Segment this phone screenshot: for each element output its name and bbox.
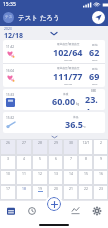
staticText: 16 [99,171,103,176]
button[interactable]: 26 [0,139,16,155]
staticText: 体温 [73,115,79,118]
staticText: 26 [6,140,10,145]
button[interactable]: 15:32 [3,112,105,133]
staticText: 5 [39,156,41,161]
staticText: 21 [69,186,73,191]
button[interactable]: 2 [93,139,108,155]
button[interactable]: Settings [86,200,108,221]
button[interactable]: 16:04 [3,64,105,87]
staticText: 15 [84,171,88,176]
staticText: 15:33 [6,93,15,97]
staticText: 6 [55,156,57,161]
button[interactable]: 4 [16,155,32,170]
staticText: 14 [69,171,73,176]
staticText: 18 [22,186,26,191]
button[interactable]: 13 [48,170,63,185]
button[interactable]: 21 [63,185,78,200]
staticText: 12 [38,171,42,176]
staticText: テスト たろう [18,13,60,22]
button[interactable]: Add record [47,197,61,211]
staticText: 体重 [63,92,69,95]
staticText: 2 [100,140,102,145]
staticText: 62 [89,46,100,58]
button[interactable]: 19 [32,185,48,200]
button[interactable]: 3 [0,155,16,170]
button[interactable]: 18 [16,185,32,200]
button[interactable]: 9 [93,155,108,170]
staticText: 最高血圧/最低血圧 [57,42,80,46]
staticText: テス [5,15,13,20]
staticText: 10 [6,171,10,176]
staticText: 20 [54,186,58,191]
staticText: 8 [85,156,87,161]
staticText: 60.00 [52,95,76,107]
staticText: 13 [54,171,58,176]
staticText: 9 [100,156,102,161]
staticText: 28 [38,140,42,145]
staticText: 2023 [4,26,12,31]
button[interactable]: 11 [16,170,32,185]
button[interactable]: Graph [64,200,86,221]
button[interactable]: Share [92,11,105,24]
staticText: mmHg [64,58,73,61]
button[interactable]: 30 [63,139,78,155]
staticText: bpm [92,58,98,61]
button[interactable]: 14 [63,170,78,185]
staticText: 脈拍 [92,43,98,46]
staticText: bpm [92,82,98,85]
staticText: 69 [89,70,100,82]
button[interactable]: History [21,200,42,221]
button[interactable]: 16 [93,170,108,185]
button[interactable]: Calendar [0,200,21,221]
button[interactable]: 17 [0,185,16,200]
button[interactable]: 5 [32,155,48,170]
button[interactable]: 10 [0,170,16,185]
button[interactable]: 8 [78,155,93,170]
button[interactable]: 15 [78,170,93,185]
staticText: 15:32 [6,116,15,120]
staticText: 4 [23,156,25,161]
button[interactable]: Expand calendar [0,134,108,139]
button[interactable]: 22 [78,185,93,200]
staticText: 23.4 [85,93,102,110]
staticText: 22 [84,186,88,191]
staticText: 7 [70,156,72,161]
staticText: ℃ [83,125,86,129]
staticText: 3 [7,156,9,161]
staticText: 102/64 [53,46,83,58]
button[interactable]: 6 [48,155,63,170]
button[interactable]: 23 [93,185,108,200]
staticText: kg [76,102,80,106]
button[interactable]: 29 [48,139,63,155]
staticText: 17 [6,186,10,191]
staticText: 15:35 [3,1,16,8]
button[interactable]: 20 [48,185,63,200]
button[interactable]: 12/1 [78,139,93,155]
button[interactable]: 12 [32,170,48,185]
staticText: 19 [38,186,42,191]
staticText: 27 [22,140,26,145]
staticText: mmHg [64,82,73,85]
staticText: 29 [54,140,58,145]
staticText: 12/1 [82,140,90,145]
staticText: 11 [22,171,26,176]
button[interactable]: 28 [32,139,48,155]
button[interactable]: Select date [47,26,61,40]
button[interactable]: 27 [16,139,32,155]
button[interactable]: 15:33 [3,89,105,110]
staticText: 12/18 [4,31,23,40]
staticText: 脈拍 [92,67,98,70]
staticText: 23 [99,186,103,191]
staticText: 36.5 [65,118,83,130]
staticText: 最高血圧/最低血圧 [57,66,80,70]
staticText: 30 [69,140,73,145]
staticText: 16:04 [6,69,15,73]
button[interactable]: 11:42 [3,40,105,63]
staticText: BMI [91,89,97,93]
button[interactable]: 7 [63,155,78,170]
button[interactable]: Profile [3,12,14,23]
staticText: 11:42 [6,45,15,49]
staticText: 111/77 [53,70,83,82]
